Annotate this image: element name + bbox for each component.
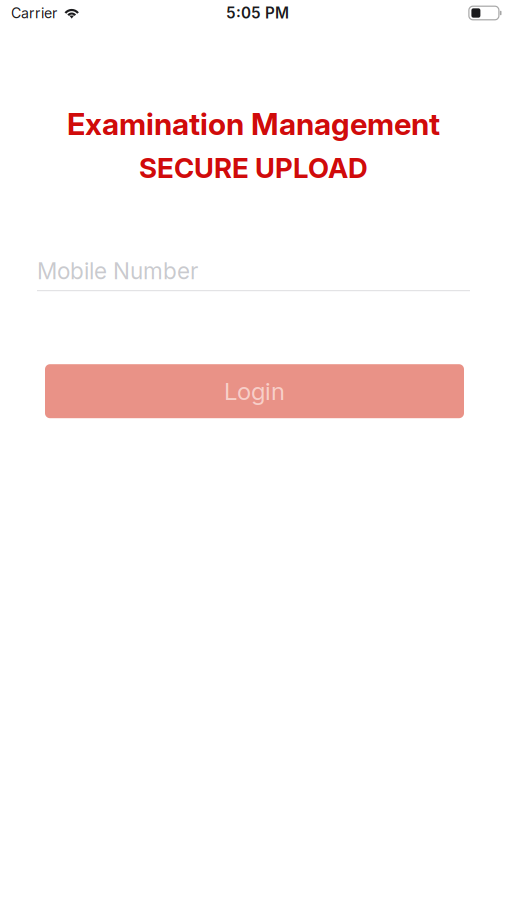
button[interactable]: Mobile Number (37, 257, 470, 291)
staticText: 5:05 PM (226, 4, 289, 22)
staticText: Examination Management (67, 106, 440, 142)
staticText: Login (224, 377, 285, 406)
staticText: Mobile Number (37, 257, 198, 285)
button[interactable]: Login (45, 364, 464, 418)
staticText: SECURE UPLOAD (139, 151, 368, 185)
staticText: Carrier (11, 4, 57, 21)
